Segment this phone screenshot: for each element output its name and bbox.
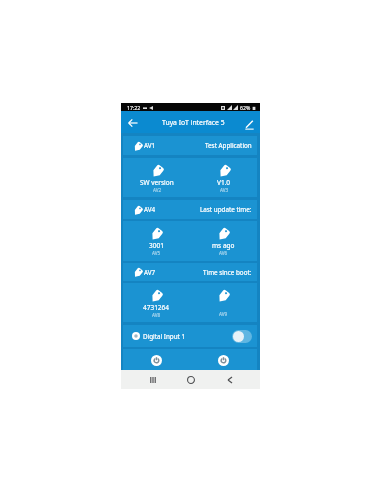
staticText: SW version — [140, 178, 174, 187]
button[interactable]: AV9 — [190, 283, 257, 322]
staticText: 17:22 — [127, 104, 141, 111]
button[interactable]: Back — [127, 117, 139, 129]
button[interactable]: Off — [190, 349, 257, 370]
button[interactable]: SW version — [123, 158, 190, 197]
staticText: AV7 — [144, 268, 156, 277]
button[interactable]: Recent apps — [138, 370, 167, 389]
staticText: AV2 — [153, 187, 162, 193]
staticText: AV9 — [219, 311, 228, 317]
staticText: Test Application — [205, 141, 252, 150]
button[interactable]: AV1 — [123, 136, 257, 155]
staticText: 3001 — [149, 241, 164, 250]
staticText: ms ago — [212, 241, 235, 250]
button[interactable]: Edit — [244, 119, 255, 130]
button[interactable]: Digital Input 1 — [123, 325, 257, 347]
staticText: AV1 — [144, 141, 156, 150]
staticText: AV3 — [220, 187, 229, 193]
staticText: AV5 — [152, 250, 161, 256]
staticText: V1.0 — [217, 178, 231, 187]
staticText: Tuya IoT interface 5 — [162, 118, 225, 127]
button[interactable]: ms ago — [190, 221, 257, 261]
staticText: 62% — [240, 104, 251, 111]
staticText: AV6 — [219, 250, 228, 256]
staticText: Digital Input 1 — [143, 332, 186, 341]
staticText: Time since boot: — [203, 268, 252, 277]
staticText: 4731264 — [143, 303, 170, 312]
staticText: AV8 — [152, 312, 161, 318]
button[interactable]: Back — [215, 370, 244, 389]
button[interactable]: 3001 — [123, 221, 190, 261]
staticText: AV4 — [144, 205, 156, 214]
button[interactable]: AV4 — [123, 200, 257, 219]
button[interactable]: AV7 — [123, 263, 257, 281]
staticText: Last update time: — [200, 205, 252, 214]
button[interactable]: V1.0 — [190, 158, 257, 197]
button[interactable]: Home — [167, 370, 215, 389]
button[interactable]: Off — [123, 349, 190, 370]
button[interactable]: 4731264 — [123, 283, 190, 322]
